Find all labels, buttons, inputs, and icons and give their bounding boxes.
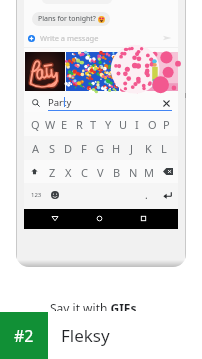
- button[interactable]: Y: [101, 116, 115, 132]
- staticText: Fleksy: [61, 324, 110, 347]
- staticText: 123: [31, 191, 42, 199]
- other: Enter: [163, 191, 172, 200]
- button[interactable]: U: [116, 116, 130, 132]
- staticText: .: [145, 188, 148, 201]
- button[interactable]: E: [57, 116, 71, 132]
- button[interactable]: A: [29, 140, 43, 156]
- button[interactable]: Z: [45, 164, 59, 180]
- staticText: H: [112, 141, 121, 156]
- button[interactable]: X: [61, 164, 75, 180]
- button[interactable]: M: [142, 164, 156, 180]
- button[interactable]: N: [126, 164, 140, 180]
- staticText: F: [81, 141, 87, 156]
- staticText: I: [135, 117, 139, 132]
- staticText: O: [148, 117, 157, 132]
- other: Shift: [31, 168, 38, 175]
- button[interactable]: H: [109, 140, 123, 156]
- button[interactable]: S: [45, 140, 59, 156]
- staticText: X: [65, 165, 72, 180]
- button[interactable]: 123: [29, 188, 43, 201]
- staticText: J: [130, 141, 134, 156]
- button[interactable]: #2: [0, 312, 202, 359]
- staticText: T: [90, 117, 97, 132]
- button[interactable]: R: [72, 116, 86, 132]
- staticText: Say it with GIFs: [50, 300, 137, 311]
- button[interactable]: L: [157, 140, 171, 156]
- button[interactable]: W: [43, 116, 57, 132]
- staticText: #2: [14, 325, 34, 347]
- staticText: B: [113, 165, 121, 180]
- other: Backspace: [163, 168, 173, 175]
- other: Recents: [140, 215, 147, 222]
- staticText: V: [97, 165, 104, 180]
- button[interactable]: V: [93, 164, 107, 180]
- staticText: Plans for tonight?: [38, 14, 96, 24]
- button[interactable]: Q: [28, 116, 42, 132]
- staticText: P: [163, 117, 170, 132]
- button[interactable]: Write a message: [24, 30, 178, 46]
- button[interactable]: J: [125, 140, 139, 156]
- staticText: S: [49, 141, 56, 156]
- staticText: Z: [49, 165, 56, 180]
- staticText: Write a message: [40, 33, 99, 43]
- button[interactable]: O: [145, 116, 159, 132]
- staticText: C: [81, 165, 88, 180]
- staticText: Party: [48, 96, 72, 109]
- button[interactable]: G: [93, 140, 107, 156]
- button[interactable]: Plans for tonight?: [32, 12, 110, 26]
- button[interactable]: .: [141, 188, 152, 201]
- staticText: U: [119, 117, 128, 132]
- button[interactable]: T: [86, 116, 100, 132]
- button[interactable]: B: [110, 164, 124, 180]
- button[interactable]: I: [130, 116, 144, 132]
- staticText: K: [145, 141, 152, 156]
- staticText: R: [76, 117, 83, 132]
- button[interactable]: F: [77, 140, 91, 156]
- other: Home: [96, 215, 103, 222]
- staticText: W: [45, 117, 56, 132]
- button[interactable]: D: [61, 140, 75, 156]
- other: Back: [51, 215, 59, 222]
- staticText: A: [32, 141, 40, 156]
- staticText: Y: [105, 117, 112, 132]
- button[interactable]: C: [77, 164, 91, 180]
- other: Emoji: [51, 191, 59, 199]
- staticText: E: [61, 117, 68, 132]
- staticText: M: [144, 165, 154, 180]
- other: Clear search: [163, 100, 170, 107]
- button[interactable]: K: [141, 140, 155, 156]
- staticText: N: [129, 165, 138, 180]
- staticText: L: [161, 141, 167, 156]
- staticText: G: [96, 141, 105, 156]
- staticText: D: [64, 141, 73, 156]
- button[interactable]: P: [159, 116, 173, 132]
- staticText: Q: [31, 117, 40, 132]
